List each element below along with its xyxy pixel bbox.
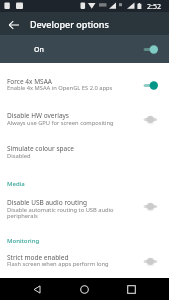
staticText: Always use GPU for screen compositing: [7, 119, 114, 127]
button[interactable]: [0, 67, 169, 100]
staticText: Strict mode enabled: [7, 253, 69, 262]
button[interactable]: [0, 134, 169, 168]
staticText: Disable automatic routing to USB audio p…: [7, 206, 119, 219]
staticText: Media: [7, 180, 25, 188]
button[interactable]: [0, 191, 169, 229]
staticText: Disable USB audio routing: [7, 198, 87, 207]
staticText: Developer options: [30, 18, 109, 30]
staticText: On: [34, 45, 44, 55]
staticText: Simulate colour space: [7, 144, 74, 153]
staticText: Enable 4x MSAA in OpenGL ES 2.0 apps: [7, 84, 113, 92]
button[interactable]: [0, 247, 169, 277]
staticText: 2:52: [147, 2, 161, 12]
button[interactable]: Back: [29, 281, 46, 298]
staticText: Flash screen when apps perform long: [7, 260, 109, 268]
staticText: Disabled: [7, 152, 31, 160]
button[interactable]: [0, 100, 169, 134]
staticText: Disable HW overlays: [7, 111, 69, 120]
button[interactable]: Home: [76, 281, 93, 298]
staticText: Monitoring: [7, 237, 40, 245]
staticText: Force 4x MSAA: [7, 77, 52, 86]
button[interactable]: On: [0, 35, 169, 63]
button[interactable]: Back: [0, 12, 27, 35]
button[interactable]: Recents: [123, 281, 140, 298]
